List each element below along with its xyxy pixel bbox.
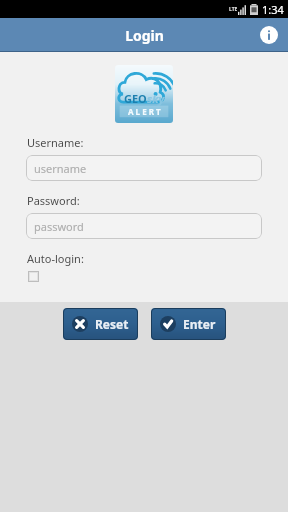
button[interactable]: Enter (151, 308, 226, 340)
staticText: Enter (183, 316, 216, 332)
staticText: username (34, 161, 87, 176)
button[interactable]: password (26, 213, 262, 239)
button[interactable]: Reset (63, 308, 138, 340)
staticText: GEO (124, 91, 147, 106)
staticText: Username: (27, 135, 84, 150)
staticText: Password: (27, 193, 80, 208)
button[interactable]: Info (258, 24, 280, 46)
staticText: sky (147, 91, 165, 106)
staticText: Login (125, 26, 164, 45)
staticText: Reset (95, 316, 129, 332)
staticText: Auto-login: (27, 251, 84, 266)
staticText: 1:34 (262, 2, 284, 17)
button[interactable]: Auto-login checkbox (28, 271, 39, 282)
staticText: password (34, 219, 84, 234)
staticText: LTE (229, 6, 238, 13)
staticText: A L E R T (128, 106, 161, 117)
button[interactable]: username (26, 155, 262, 181)
